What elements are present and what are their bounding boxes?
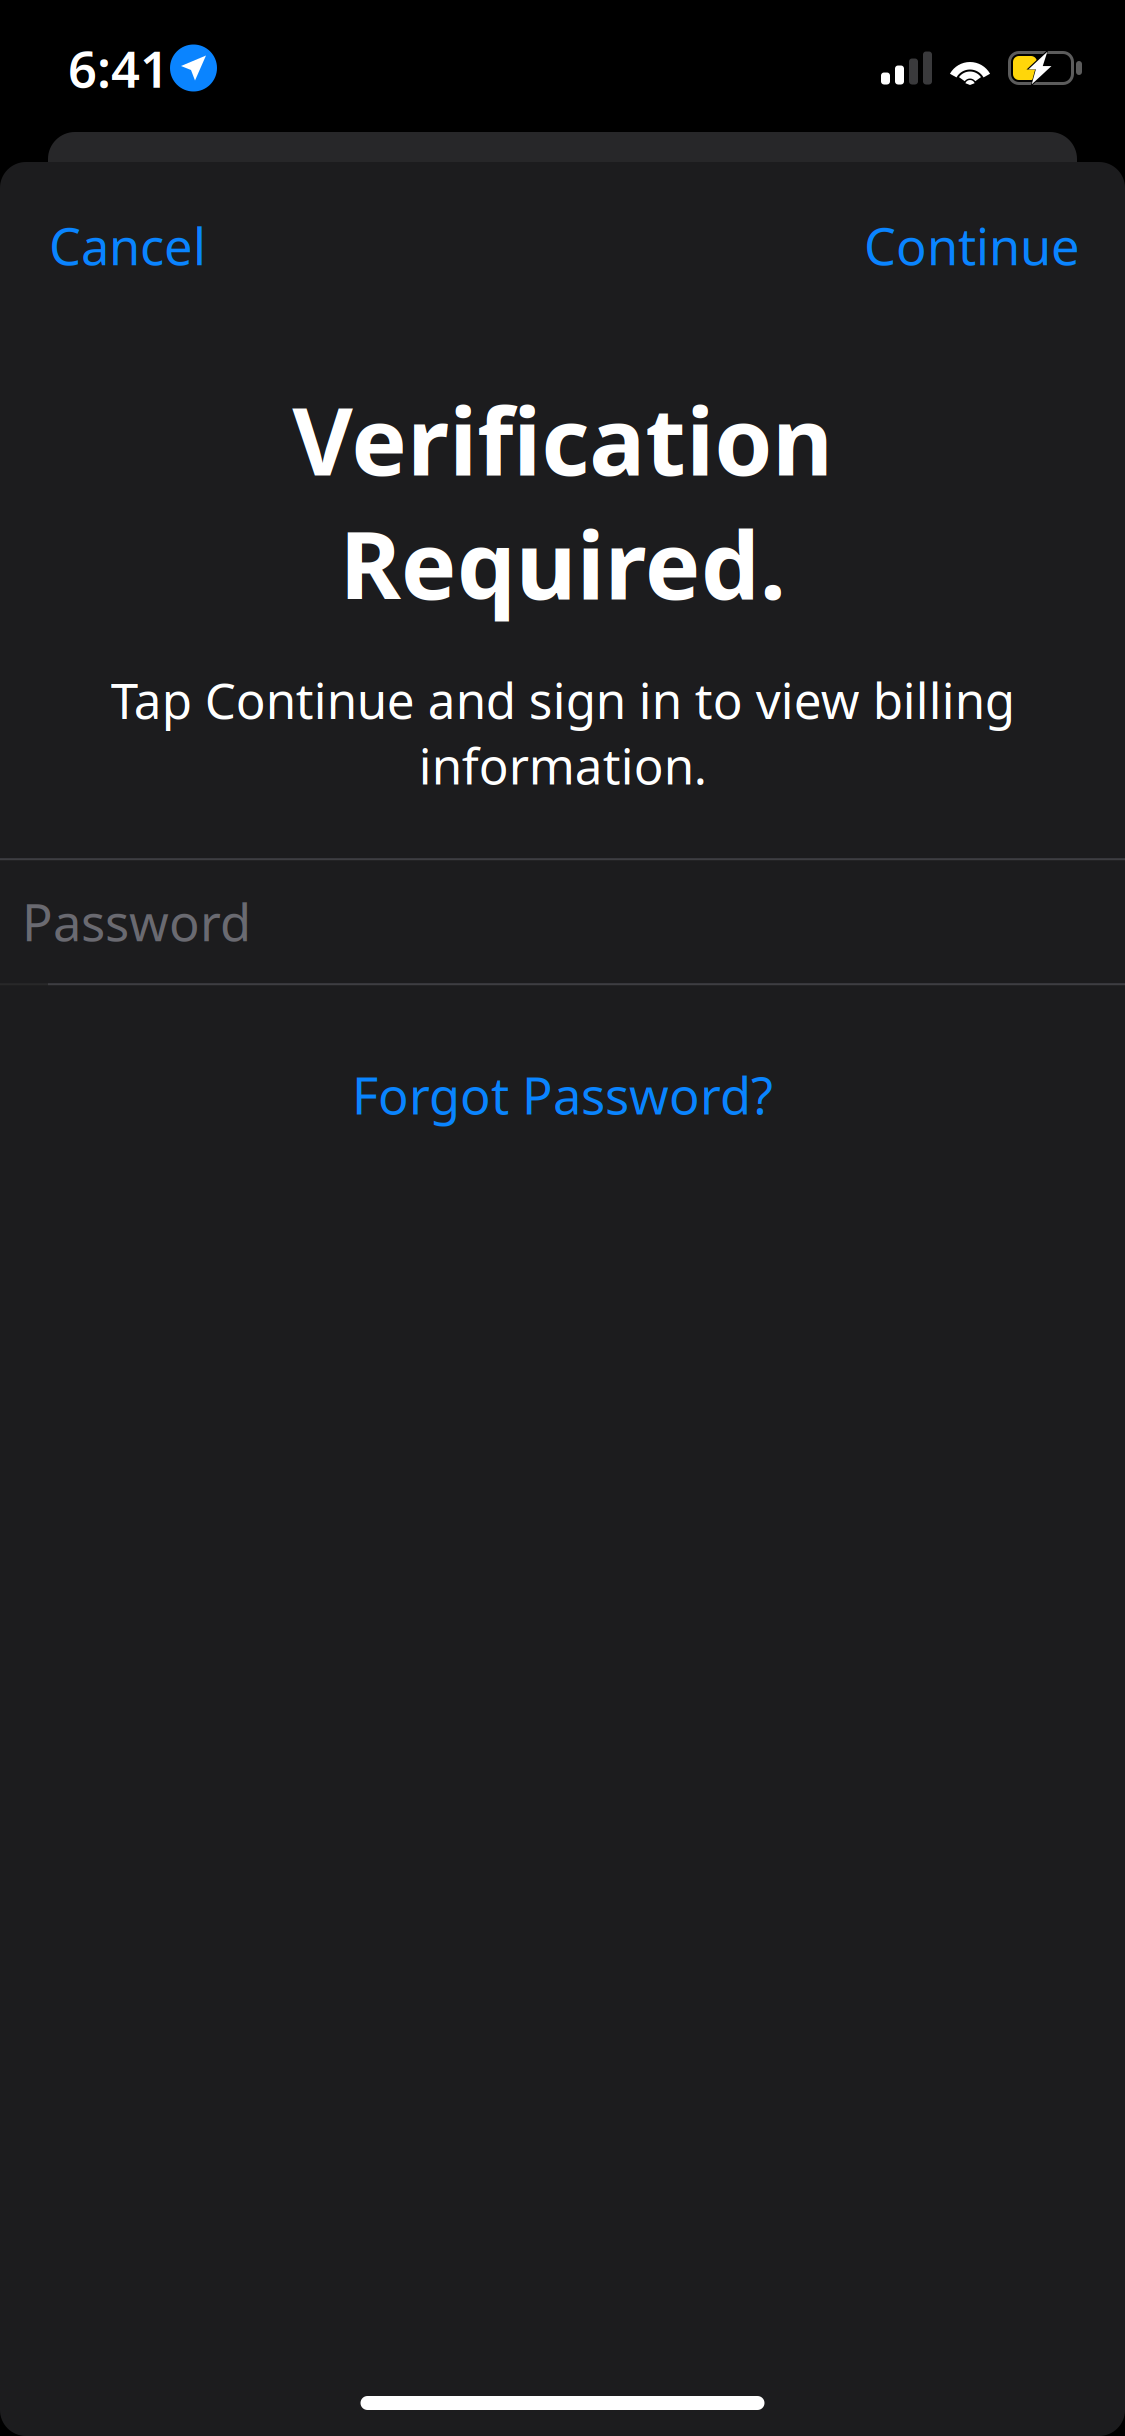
staticText: Cancel: [49, 212, 206, 279]
staticText: Password: [22, 888, 251, 955]
staticText: Verification Required.: [292, 377, 833, 625]
button[interactable]: Continue: [824, 186, 1125, 305]
button[interactable]: Password: [0, 860, 1125, 983]
button[interactable]: Cancel: [0, 186, 246, 305]
staticText: Tap Continue and sign in to view billing…: [110, 667, 1014, 798]
staticText: 6:41: [68, 34, 169, 102]
staticText: Continue: [864, 212, 1080, 279]
button[interactable]: Forgot Password?: [0, 1037, 1125, 1152]
staticText: Forgot Password?: [352, 1061, 773, 1128]
